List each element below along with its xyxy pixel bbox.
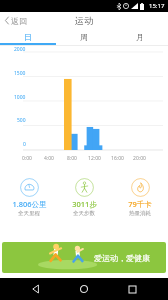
- other: 热量消耗: [131, 178, 150, 197]
- staticText: 爱运动，爱健康: [94, 253, 150, 263]
- staticText: 热量消耗: [129, 210, 151, 217]
- button[interactable]: 全天里程: [2, 178, 56, 217]
- staticText: 79千卡: [128, 199, 152, 209]
- button[interactable]: 返回: [0, 12, 32, 29]
- staticText: 16:00: [111, 155, 124, 162]
- staticText: 15:17: [149, 2, 165, 10]
- staticText: 日: [24, 32, 32, 42]
- staticText: 0:00: [22, 155, 32, 162]
- staticText: 返回: [11, 16, 27, 26]
- other: 全天里程: [20, 178, 39, 197]
- button[interactable]: Recent apps: [120, 278, 144, 300]
- staticText: 12:00: [88, 155, 101, 162]
- button[interactable]: 全天步数: [57, 178, 111, 217]
- staticText: 0: [23, 141, 26, 147]
- other: 全天步数: [75, 178, 94, 197]
- staticText: 全天里程: [18, 210, 40, 217]
- staticText: 1000: [14, 94, 26, 100]
- staticText: 500: [17, 117, 26, 123]
- staticText: 全天步数: [73, 210, 95, 217]
- staticText: 3011步: [72, 199, 97, 209]
- staticText: 周: [80, 32, 88, 42]
- button[interactable]: 热量消耗: [113, 178, 167, 217]
- staticText: 20:00: [133, 155, 146, 162]
- button[interactable]: 月: [112, 29, 168, 45]
- button[interactable]: 周: [56, 29, 112, 45]
- staticText: 运动: [75, 15, 93, 26]
- staticText: 4:00: [44, 155, 54, 162]
- button[interactable]: 日: [0, 29, 56, 45]
- staticText: 1500: [14, 70, 26, 76]
- staticText: 2000: [14, 46, 26, 52]
- button[interactable]: Home: [72, 278, 96, 300]
- staticText: 月: [136, 32, 144, 42]
- staticText: 8:00: [67, 155, 77, 162]
- button[interactable]: 爱运动，爱健康: [2, 242, 166, 273]
- staticText: 1.806公里: [12, 199, 47, 209]
- button[interactable]: Back: [24, 278, 48, 300]
